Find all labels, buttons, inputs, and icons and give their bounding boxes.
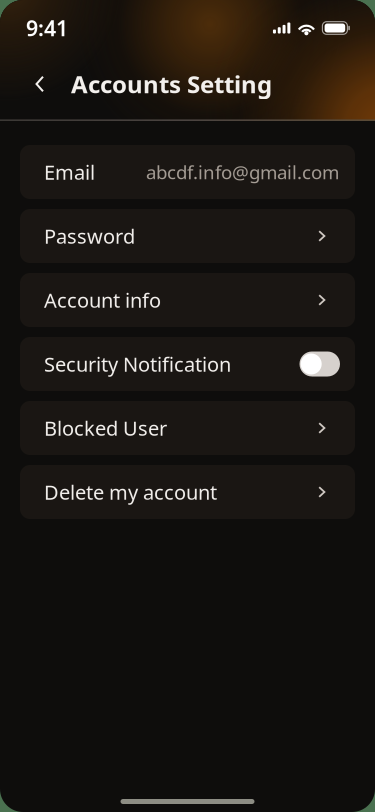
button[interactable]: Password xyxy=(20,209,355,263)
staticText: Accounts xyxy=(71,68,181,100)
button[interactable]: Back xyxy=(35,62,71,106)
staticText: 9:41 xyxy=(26,14,68,42)
button[interactable]: Email xyxy=(20,145,355,199)
button[interactable]: Blocked User xyxy=(20,401,355,455)
staticText: Delete my account xyxy=(44,479,217,505)
staticText: Password xyxy=(44,223,135,249)
staticText: Blocked User xyxy=(44,415,167,441)
button[interactable]: Security Notification xyxy=(20,337,355,391)
staticText: Security Notification xyxy=(44,351,231,377)
staticText: abcdf.info@gmail.com xyxy=(146,160,339,184)
button[interactable]: Account info xyxy=(20,273,355,327)
staticText: Setting xyxy=(187,68,272,100)
staticText: Account info xyxy=(44,287,161,313)
button[interactable]: Delete my account xyxy=(20,465,355,519)
staticText: Email xyxy=(44,159,95,185)
